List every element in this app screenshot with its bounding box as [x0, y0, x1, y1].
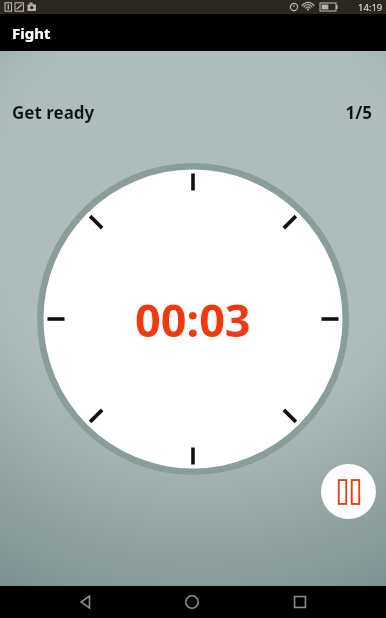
staticText: 1/5	[345, 101, 372, 124]
staticText: 14:19	[358, 1, 383, 14]
staticText: Get ready	[12, 101, 95, 124]
staticText: 00:03	[135, 289, 251, 350]
button[interactable]: Back	[63, 586, 107, 618]
staticText: Fight	[12, 23, 51, 43]
button[interactable]: Home	[170, 586, 214, 618]
button[interactable]: Pause	[321, 464, 376, 519]
button[interactable]: Recent apps	[278, 586, 322, 618]
